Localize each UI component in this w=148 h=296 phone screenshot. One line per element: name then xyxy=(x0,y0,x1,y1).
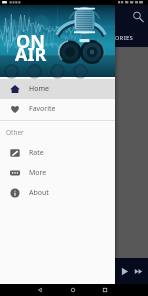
staticText: More xyxy=(29,168,47,178)
button[interactable]: Previous xyxy=(106,266,117,277)
button[interactable]: Play xyxy=(118,265,131,278)
button[interactable]: CATEGORIES xyxy=(95,34,134,42)
button[interactable]: Favorite xyxy=(0,99,115,119)
staticText: AIR xyxy=(15,42,47,67)
staticText: Favorite xyxy=(29,104,56,114)
staticText: Home xyxy=(29,84,49,94)
button[interactable]: Search xyxy=(131,10,144,23)
staticText: CATEGORIES xyxy=(95,34,134,42)
button[interactable]: Back xyxy=(37,287,43,293)
button[interactable]: Rate xyxy=(0,143,115,163)
button[interactable]: Home xyxy=(0,79,115,99)
staticText: ON xyxy=(16,29,45,54)
button[interactable]: More xyxy=(0,163,115,183)
staticText: Rate xyxy=(29,148,44,158)
staticText: About xyxy=(29,188,49,198)
button[interactable]: Next xyxy=(133,266,144,277)
button[interactable]: About xyxy=(0,183,115,203)
button[interactable]: Home xyxy=(70,287,76,293)
button[interactable]: Recents xyxy=(102,287,108,293)
staticText: Other xyxy=(6,128,24,137)
